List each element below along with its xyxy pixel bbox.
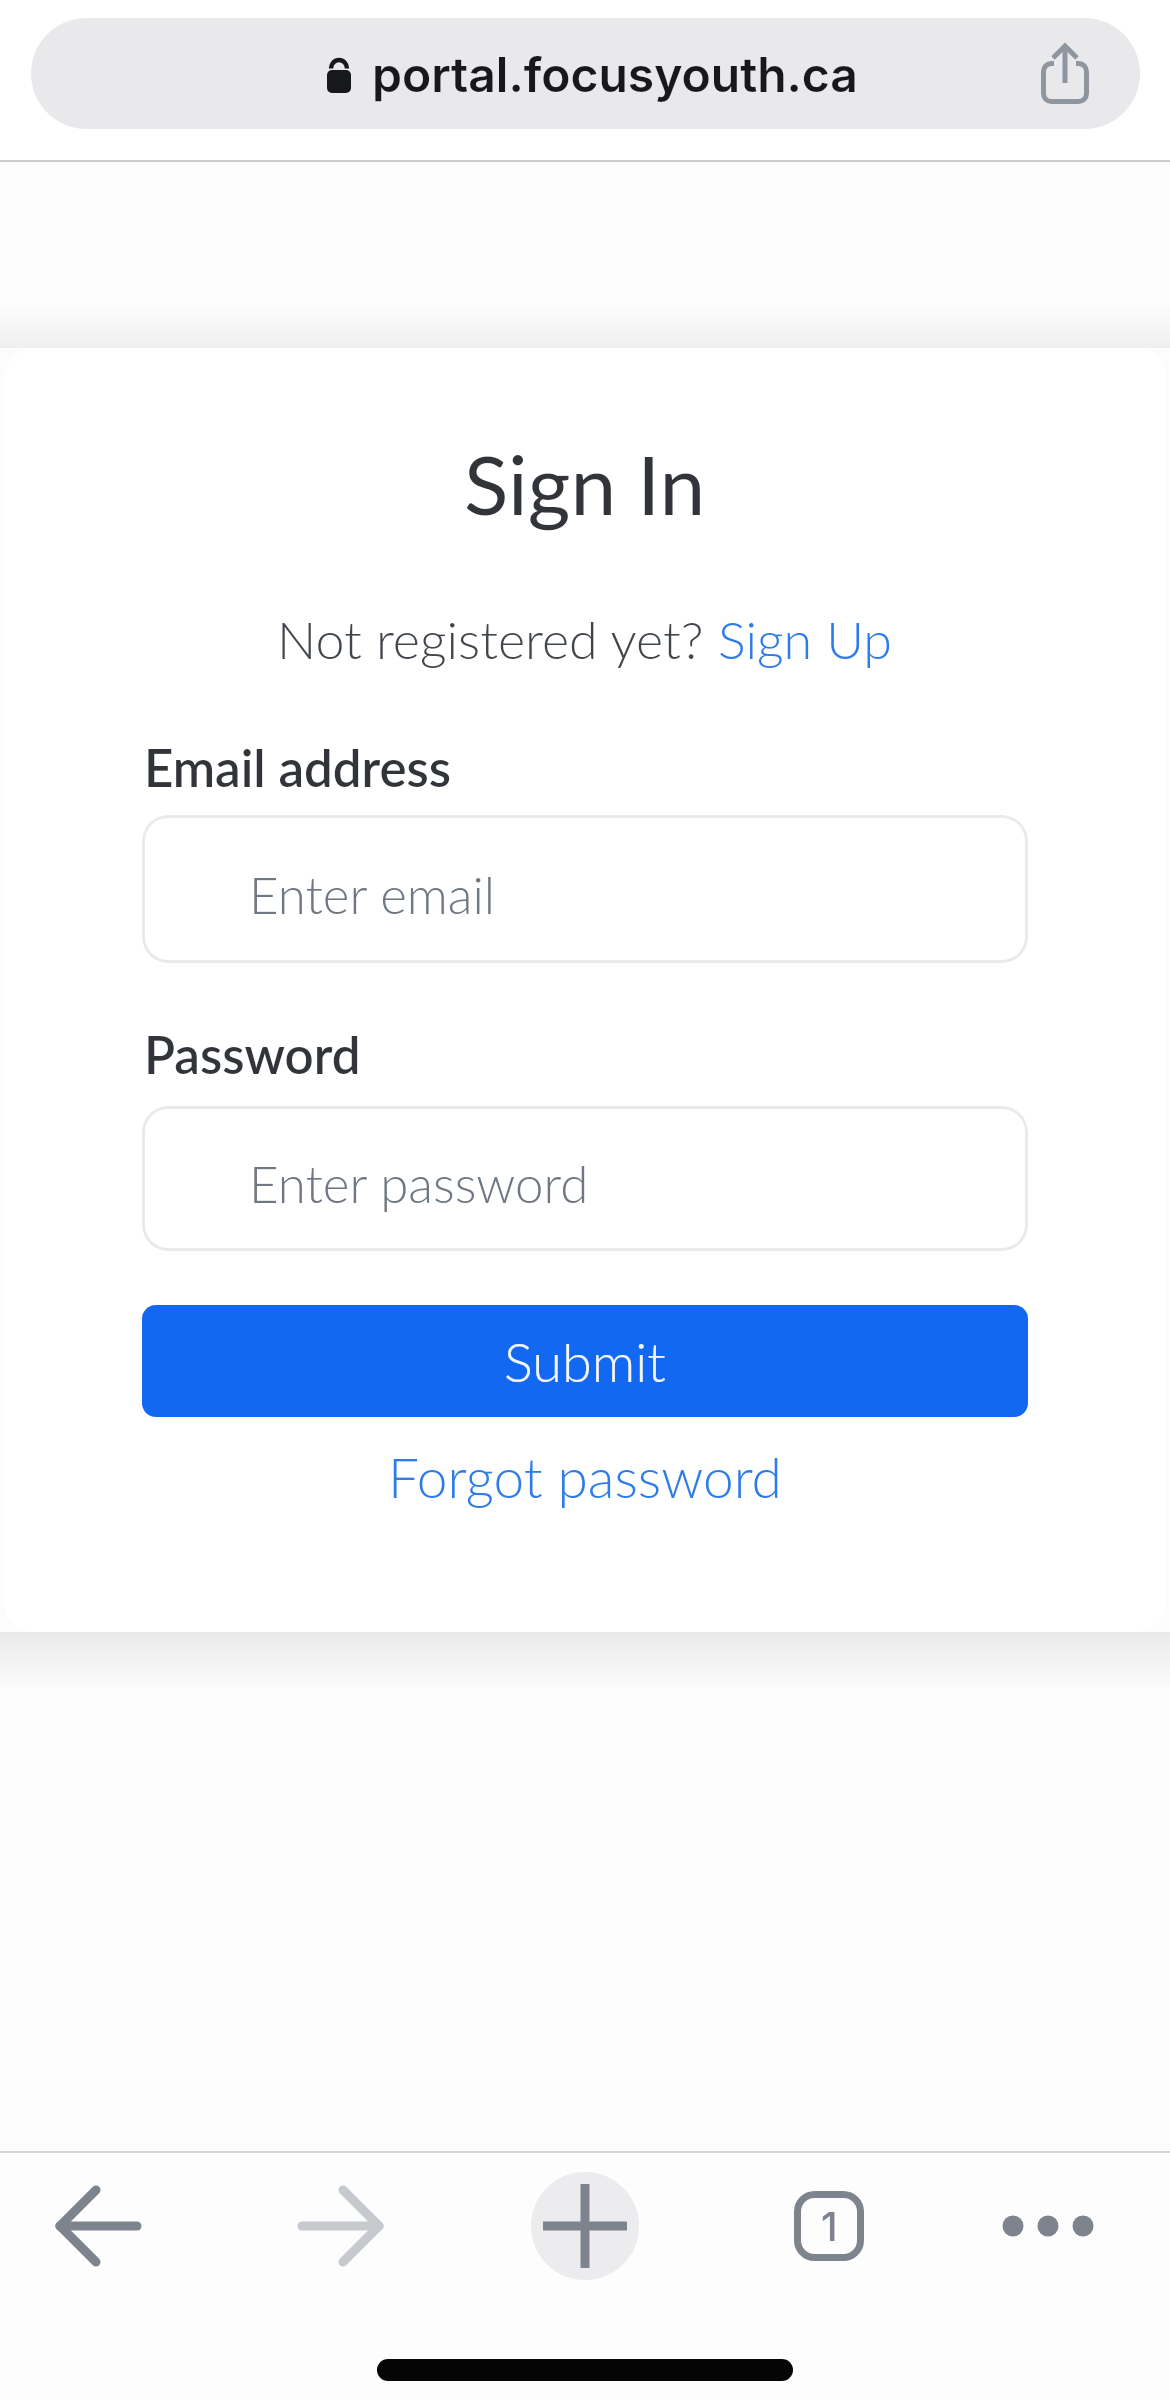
staticText: portal.focusyouth.ca <box>372 45 858 103</box>
button[interactable] <box>988 2192 1108 2260</box>
staticText: Not registered yet? <box>277 608 718 670</box>
staticText: Forgot password <box>388 1444 782 1510</box>
button[interactable]: Submit <box>142 1305 1028 1417</box>
button[interactable]: Sign Up <box>718 608 893 670</box>
staticText: Sign In <box>464 434 706 532</box>
staticText: Enter email <box>249 864 496 925</box>
staticText: Password <box>144 1024 361 1085</box>
button[interactable] <box>142 815 1028 963</box>
staticText: Sign Up <box>718 608 893 670</box>
staticText: Submit <box>504 1329 666 1394</box>
staticText: Enter password <box>249 1153 589 1214</box>
button[interactable] <box>40 2169 154 2283</box>
button[interactable] <box>142 1106 1028 1251</box>
button[interactable] <box>284 2169 398 2283</box>
button[interactable]: 1 <box>790 2187 868 2265</box>
button[interactable]: Forgot password <box>388 1444 782 1510</box>
button[interactable]: portal.focusyouth.ca <box>31 18 1140 129</box>
button[interactable] <box>531 2172 639 2280</box>
staticText: Email address <box>144 737 452 798</box>
staticText: 1 <box>821 2202 838 2250</box>
